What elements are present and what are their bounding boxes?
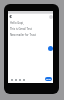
staticText: New mailer for Trust (10, 33, 36, 37)
staticText: This is Gmail Test (10, 27, 32, 31)
button[interactable]: Insert photo (14, 77, 18, 83)
button[interactable]: Insert link (18, 77, 22, 83)
staticText: Send (46, 78, 51, 81)
button[interactable]: Attach file (10, 77, 14, 83)
button[interactable]: Account (49, 13, 53, 20)
button[interactable]: More options (22, 77, 26, 83)
button[interactable]: Back (8, 13, 13, 20)
button[interactable]: Compose (48, 46, 53, 51)
staticText: Hello Gopi, (10, 21, 24, 25)
button[interactable]: Send (45, 77, 52, 81)
